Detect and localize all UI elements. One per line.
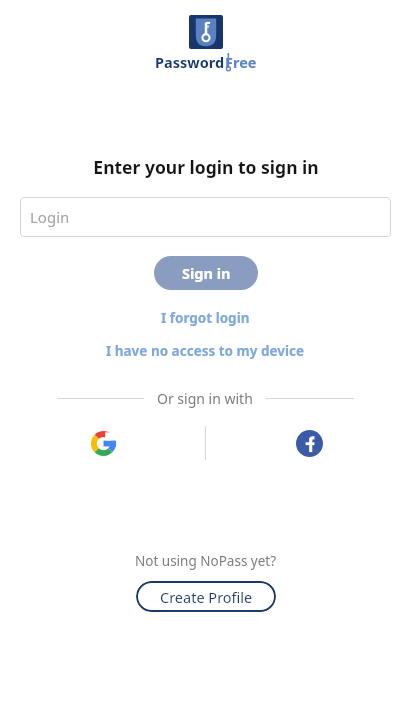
- staticText: I have no access to my device: [106, 342, 305, 360]
- staticText: Create Profile: [160, 587, 253, 607]
- staticText: Or sign in with: [157, 389, 253, 408]
- staticText: Free: [225, 52, 257, 72]
- staticText: Sign in: [182, 263, 231, 283]
- staticText: Password: [155, 52, 225, 72]
- button[interactable]: Sign in with Facebook: [290, 424, 328, 462]
- button[interactable]: Login: [20, 197, 391, 237]
- staticText: I forgot login: [161, 309, 250, 327]
- button[interactable]: Sign in: [154, 256, 258, 290]
- button[interactable]: Create Profile: [136, 581, 276, 612]
- staticText: Login: [30, 207, 70, 227]
- staticText: Not using NoPass yet?: [135, 552, 277, 570]
- staticText: Enter your login to sign in: [93, 155, 319, 179]
- button[interactable]: I have no access to my device: [98, 340, 313, 362]
- button[interactable]: Sign in with Google: [84, 424, 122, 462]
- button[interactable]: I forgot login: [153, 307, 258, 329]
